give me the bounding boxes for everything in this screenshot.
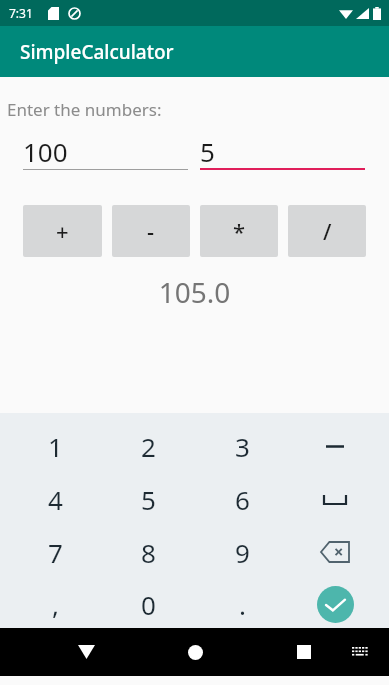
button[interactable]: 7 xyxy=(19,531,91,573)
button[interactable]: 3 xyxy=(206,425,278,467)
button[interactable]: Switch keyboard xyxy=(343,635,377,669)
staticText: 1 xyxy=(48,429,63,464)
staticText: - xyxy=(147,216,155,246)
staticText: 7:31 xyxy=(9,5,33,21)
staticText: / xyxy=(323,216,332,246)
button[interactable]: / xyxy=(288,205,366,257)
button[interactable]: - xyxy=(112,205,190,257)
button[interactable]: 2 xyxy=(112,425,184,467)
staticText: 3 xyxy=(235,429,250,464)
staticText: 6 xyxy=(235,482,250,517)
staticText: 4 xyxy=(48,482,63,517)
staticText: 8 xyxy=(141,535,156,570)
staticText: 7 xyxy=(48,535,63,570)
button[interactable]: 9 xyxy=(206,531,278,573)
staticText: 5 xyxy=(200,134,215,169)
staticText: SimpleCalculator xyxy=(20,39,174,65)
button[interactable]: 6 xyxy=(206,478,278,520)
staticText: 105.0 xyxy=(0,273,389,311)
staticText: Enter the numbers: xyxy=(7,98,162,121)
staticText: , xyxy=(52,587,59,622)
staticText: * xyxy=(233,216,246,246)
button[interactable]: . xyxy=(206,583,278,625)
staticText: 2 xyxy=(141,429,156,464)
button[interactable]: 4 xyxy=(19,478,91,520)
staticText: 100 xyxy=(23,134,68,169)
button[interactable]: 1 xyxy=(19,425,91,467)
button[interactable]: Home xyxy=(173,630,217,674)
button[interactable]: * xyxy=(200,205,278,257)
button[interactable]: Minus xyxy=(299,425,371,467)
staticText: 5 xyxy=(141,482,156,517)
button[interactable]: 5 xyxy=(200,132,365,170)
button[interactable]: 0 xyxy=(112,583,184,625)
staticText: + xyxy=(56,216,69,246)
button[interactable]: Space xyxy=(299,478,371,520)
button[interactable]: Recents xyxy=(282,630,326,674)
button[interactable]: Backspace xyxy=(299,531,371,573)
button[interactable]: 8 xyxy=(112,531,184,573)
button[interactable]: , xyxy=(19,583,91,625)
staticText: 9 xyxy=(235,535,250,570)
button[interactable]: Done xyxy=(299,583,371,625)
staticText: . xyxy=(239,587,246,622)
staticText: 0 xyxy=(141,587,156,622)
button[interactable]: + xyxy=(23,205,102,257)
button[interactable]: 100 xyxy=(23,132,188,170)
button[interactable]: Back xyxy=(64,630,108,674)
button[interactable]: 5 xyxy=(112,478,184,520)
